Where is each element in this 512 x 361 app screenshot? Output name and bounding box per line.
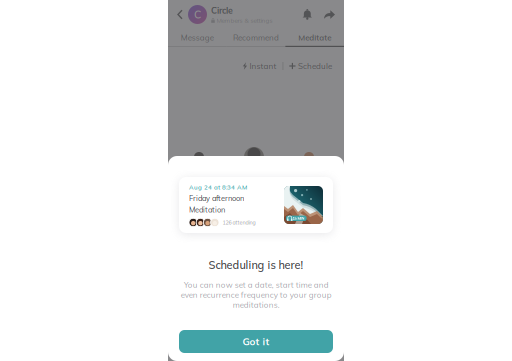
staticText: Aug 24 at 8:34 AM [189, 183, 247, 191]
staticText: Recommend [233, 32, 279, 42]
button[interactable]: Schedule [289, 58, 332, 74]
staticText: Message [181, 32, 214, 42]
staticText: Schedule [298, 61, 332, 71]
staticText: C [194, 8, 201, 21]
staticText: Friday afternoon [189, 193, 244, 203]
staticText: Meditation [189, 205, 225, 214]
staticText: Got it [242, 335, 269, 348]
button[interactable]: Meditate [285, 27, 344, 47]
button[interactable]: Back [172, 4, 188, 25]
staticText: 126 attending [222, 219, 255, 226]
staticText: 15 MIN [293, 216, 305, 221]
staticText: Circle [211, 5, 233, 16]
staticText: Members & settings [216, 16, 272, 24]
button[interactable]: Share [321, 7, 338, 22]
staticText: Scheduling is here! [208, 258, 303, 272]
button[interactable]: Notifications [300, 6, 315, 23]
staticText: You can now set a date, start time and e… [180, 280, 331, 310]
button[interactable]: Message [168, 27, 227, 47]
button[interactable]: Instant [243, 58, 277, 74]
staticText: Instant [250, 61, 277, 71]
staticText: Meditate [298, 32, 331, 42]
button[interactable]: Recommend [227, 27, 285, 47]
button[interactable]: Got it [179, 330, 333, 353]
